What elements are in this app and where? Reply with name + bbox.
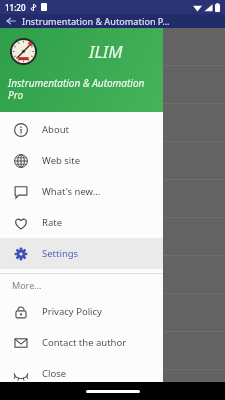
button[interactable] xyxy=(0,218,225,256)
button[interactable]: Privacy Policy xyxy=(0,296,163,327)
staticText: More... xyxy=(12,279,42,291)
button[interactable]: Settings xyxy=(0,238,163,269)
staticText: Instrumentation & Automation Pro xyxy=(8,76,145,102)
button[interactable] xyxy=(0,332,225,370)
staticText: ILIM xyxy=(89,40,123,63)
button[interactable]: Contact the author xyxy=(0,327,163,358)
button[interactable] xyxy=(0,66,225,104)
staticText: Rate xyxy=(42,216,63,229)
button[interactable]: Web site xyxy=(0,145,163,176)
button[interactable]: Back xyxy=(0,14,22,28)
staticText: 11:20 xyxy=(5,2,26,13)
button[interactable]: Rate xyxy=(0,207,163,238)
button[interactable] xyxy=(0,142,225,180)
button[interactable] xyxy=(0,256,225,294)
button[interactable] xyxy=(0,28,225,66)
staticText: What's new... xyxy=(42,185,101,198)
button[interactable] xyxy=(0,180,225,218)
staticText: Settings xyxy=(42,247,79,260)
staticText: Contact the author xyxy=(42,336,127,349)
staticText: Web site xyxy=(42,154,81,167)
staticText: Privacy Policy xyxy=(42,305,102,318)
staticText: Instrumentation & Automation P... xyxy=(22,15,170,27)
button[interactable]: What's new... xyxy=(0,176,163,207)
button[interactable] xyxy=(0,294,225,332)
staticText: Close xyxy=(42,367,67,380)
button[interactable]: Close xyxy=(0,358,163,389)
button[interactable] xyxy=(0,104,225,142)
button[interactable]: About xyxy=(0,114,163,145)
staticText: About xyxy=(42,123,69,136)
